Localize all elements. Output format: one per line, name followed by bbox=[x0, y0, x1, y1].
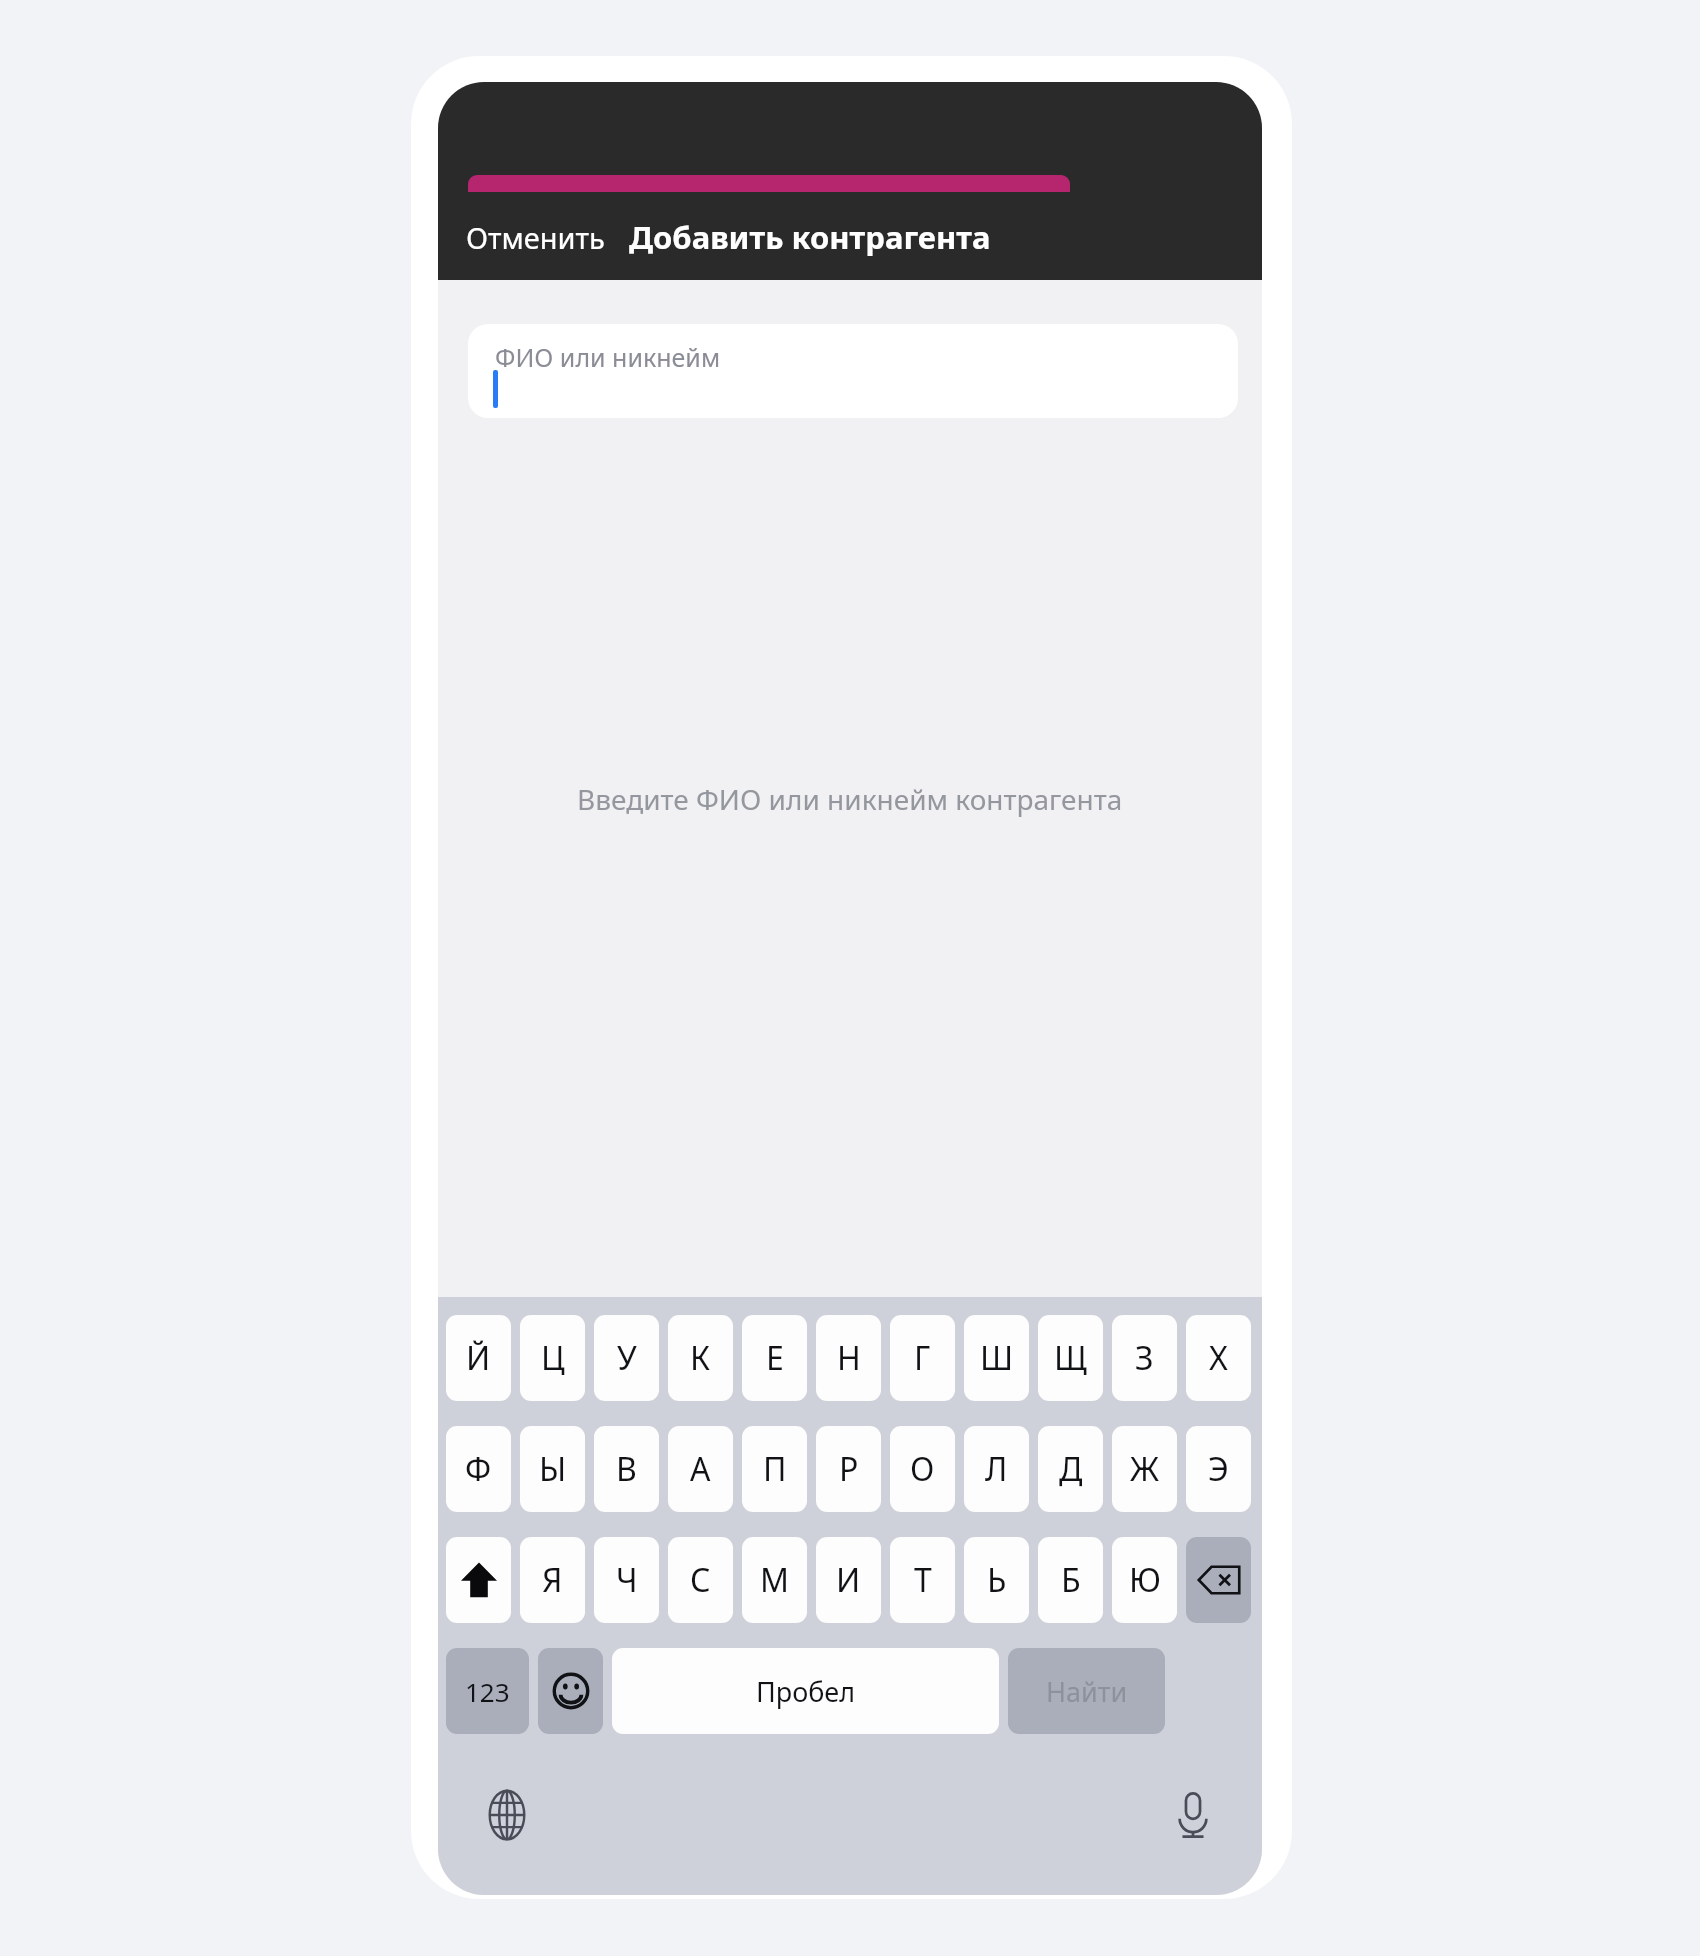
button[interactable]: Отменить bbox=[466, 218, 605, 257]
staticText: В bbox=[616, 1447, 637, 1491]
button[interactable]: Ц bbox=[520, 1315, 585, 1401]
button[interactable]: С bbox=[668, 1537, 733, 1623]
button[interactable]: М bbox=[742, 1537, 807, 1623]
staticText: Пробел bbox=[756, 1673, 856, 1710]
staticText: С bbox=[690, 1558, 711, 1602]
button[interactable]: К bbox=[668, 1315, 733, 1401]
button[interactable]: Пробел bbox=[612, 1648, 999, 1734]
staticText: ФИО или никнейм bbox=[495, 340, 721, 374]
staticText: А bbox=[690, 1447, 711, 1491]
button[interactable]: П bbox=[742, 1426, 807, 1512]
staticText: Й bbox=[466, 1336, 491, 1380]
button[interactable]: Э bbox=[1186, 1426, 1251, 1512]
button[interactable]: Change language bbox=[464, 1772, 550, 1858]
button[interactable]: Ы bbox=[520, 1426, 585, 1512]
staticText: З bbox=[1135, 1336, 1154, 1380]
staticText: Я bbox=[542, 1558, 563, 1602]
staticText: Ш bbox=[980, 1336, 1014, 1380]
button[interactable]: Ь bbox=[964, 1537, 1029, 1623]
button[interactable]: Д bbox=[1038, 1426, 1103, 1512]
staticText: Д bbox=[1059, 1447, 1083, 1491]
button[interactable]: З bbox=[1112, 1315, 1177, 1401]
button[interactable]: Х bbox=[1186, 1315, 1251, 1401]
staticText: Найти bbox=[1046, 1673, 1128, 1710]
staticText: Добавить контрагента bbox=[629, 216, 991, 258]
button[interactable]: Л bbox=[964, 1426, 1029, 1512]
button[interactable]: 123 bbox=[446, 1648, 529, 1734]
button[interactable]: Ч bbox=[594, 1537, 659, 1623]
button[interactable]: Ю bbox=[1112, 1537, 1177, 1623]
button[interactable]: Voice input bbox=[1150, 1772, 1236, 1858]
staticText: Х bbox=[1209, 1336, 1228, 1380]
staticText: Г bbox=[914, 1336, 931, 1380]
button[interactable]: А bbox=[668, 1426, 733, 1512]
staticText: Ю bbox=[1129, 1558, 1161, 1602]
button[interactable]: Щ bbox=[1038, 1315, 1103, 1401]
button[interactable]: Backspace bbox=[1186, 1537, 1251, 1623]
button[interactable]: Т bbox=[890, 1537, 955, 1623]
staticText: Н bbox=[837, 1336, 861, 1380]
button[interactable]: ФИО или никнейм bbox=[468, 324, 1238, 418]
staticText: Ж bbox=[1130, 1447, 1159, 1491]
staticText: Э bbox=[1208, 1447, 1229, 1491]
staticText: Щ bbox=[1054, 1336, 1087, 1380]
staticText: И bbox=[836, 1558, 861, 1602]
staticText: Введите ФИО или никнейм контрагента bbox=[577, 780, 1123, 818]
staticText: М bbox=[760, 1558, 790, 1602]
button[interactable]: Е bbox=[742, 1315, 807, 1401]
staticText: Ы bbox=[539, 1447, 567, 1491]
staticText: Р bbox=[839, 1447, 859, 1491]
button[interactable]: Ф bbox=[446, 1426, 511, 1512]
button[interactable]: В bbox=[594, 1426, 659, 1512]
staticText: 123 bbox=[465, 1674, 510, 1709]
button[interactable]: Б bbox=[1038, 1537, 1103, 1623]
button[interactable]: Я bbox=[520, 1537, 585, 1623]
staticText: О bbox=[910, 1447, 935, 1491]
button[interactable]: Й bbox=[446, 1315, 511, 1401]
staticText: П bbox=[763, 1447, 787, 1491]
button[interactable]: Ш bbox=[964, 1315, 1029, 1401]
button[interactable]: И bbox=[816, 1537, 881, 1623]
staticText: Б bbox=[1061, 1558, 1081, 1602]
button[interactable]: Ж bbox=[1112, 1426, 1177, 1512]
button[interactable]: Emoji bbox=[538, 1648, 603, 1734]
staticText: Ф bbox=[465, 1447, 492, 1491]
button[interactable]: Р bbox=[816, 1426, 881, 1512]
staticText: Отменить bbox=[466, 218, 605, 257]
staticText: У bbox=[617, 1336, 637, 1380]
staticText: Ь bbox=[987, 1558, 1007, 1602]
staticText: Л bbox=[985, 1447, 1008, 1491]
staticText: Е bbox=[766, 1336, 784, 1380]
button[interactable]: Н bbox=[816, 1315, 881, 1401]
staticText: К bbox=[690, 1336, 711, 1380]
staticText: Ц bbox=[541, 1336, 565, 1380]
button[interactable]: О bbox=[890, 1426, 955, 1512]
staticText: Ч bbox=[616, 1558, 638, 1602]
button[interactable]: У bbox=[594, 1315, 659, 1401]
button[interactable]: Г bbox=[890, 1315, 955, 1401]
button[interactable]: Shift bbox=[446, 1537, 511, 1623]
button[interactable]: Найти bbox=[1008, 1648, 1165, 1734]
staticText: Т bbox=[914, 1558, 932, 1602]
